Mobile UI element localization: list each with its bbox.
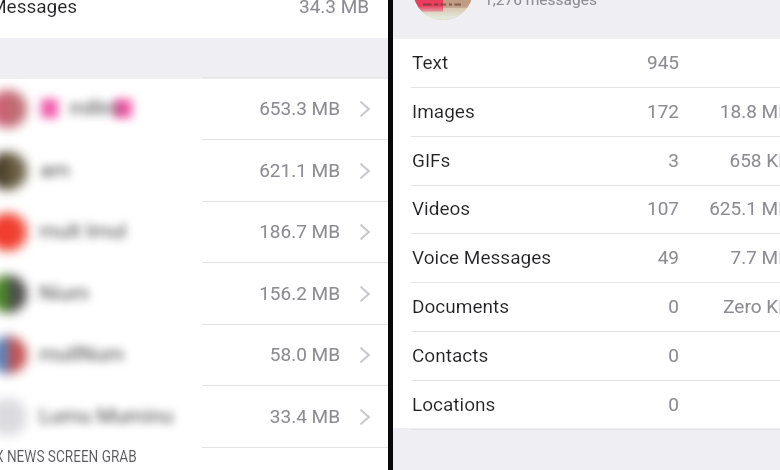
button[interactable]: mlllm (0, 78, 388, 140)
staticText: Text (412, 51, 449, 73)
staticText: 49 (579, 246, 679, 268)
staticText: 172 (579, 100, 679, 122)
staticText: 0 (579, 295, 679, 317)
staticText: Nium (39, 281, 90, 306)
staticText: Voice Messages (412, 246, 552, 268)
staticText: Messages (0, 0, 78, 17)
button[interactable]: mult lmul (0, 201, 388, 263)
staticText: 621.1 MB (180, 159, 340, 181)
staticText: Images (412, 100, 475, 122)
button[interactable]: am (0, 140, 388, 202)
button[interactable]: Nium (0, 263, 388, 325)
button[interactable]: Documents (393, 283, 780, 332)
staticText: GIFs (412, 149, 451, 171)
staticText: Videos (412, 197, 471, 219)
staticText: 58.0 MB (180, 343, 340, 365)
staticText: 107 (579, 197, 679, 219)
staticText: 0 (579, 393, 679, 415)
staticText: 7.7 MB (690, 246, 780, 268)
button[interactable]: Text (393, 39, 780, 88)
staticText: Zero KB (690, 295, 780, 317)
button[interactable]: mullNum (0, 324, 388, 386)
staticText: 625.1 MB (690, 197, 780, 219)
staticText: 1,276 messages (484, 0, 597, 9)
staticText: Contacts (412, 344, 489, 366)
button[interactable]: Locations (393, 381, 780, 430)
button[interactable]: Lumu Muminu (0, 386, 388, 448)
staticText: Locations (412, 393, 496, 415)
staticText: mullNum (39, 342, 125, 367)
button[interactable]: Contacts (393, 332, 780, 381)
button[interactable]: Voice Messages (393, 234, 780, 283)
staticText: 33.4 MB (180, 405, 340, 427)
staticText: mult lmul (39, 219, 127, 244)
staticText: 658 KB (690, 149, 780, 171)
staticText: 186.7 MB (180, 220, 340, 242)
staticText: 18.8 MB (690, 100, 780, 122)
staticText: 653.3 MB (180, 97, 340, 119)
staticText: X NEWS SCREEN GRAB (0, 447, 137, 466)
staticText: 945 (579, 51, 679, 73)
staticText: 0 (579, 344, 679, 366)
staticText: Documents (412, 295, 509, 317)
button[interactable]: Images (393, 88, 780, 137)
button[interactable]: Videos (393, 185, 780, 234)
staticText: am (40, 158, 70, 183)
staticText: 34.3 MB (299, 0, 370, 17)
staticText: 3 (579, 149, 679, 171)
button[interactable]: GIFs (393, 137, 780, 186)
staticText: mlllm (69, 96, 122, 121)
staticText: 156.2 MB (180, 282, 340, 304)
staticText: Lumu Muminu (39, 404, 174, 429)
